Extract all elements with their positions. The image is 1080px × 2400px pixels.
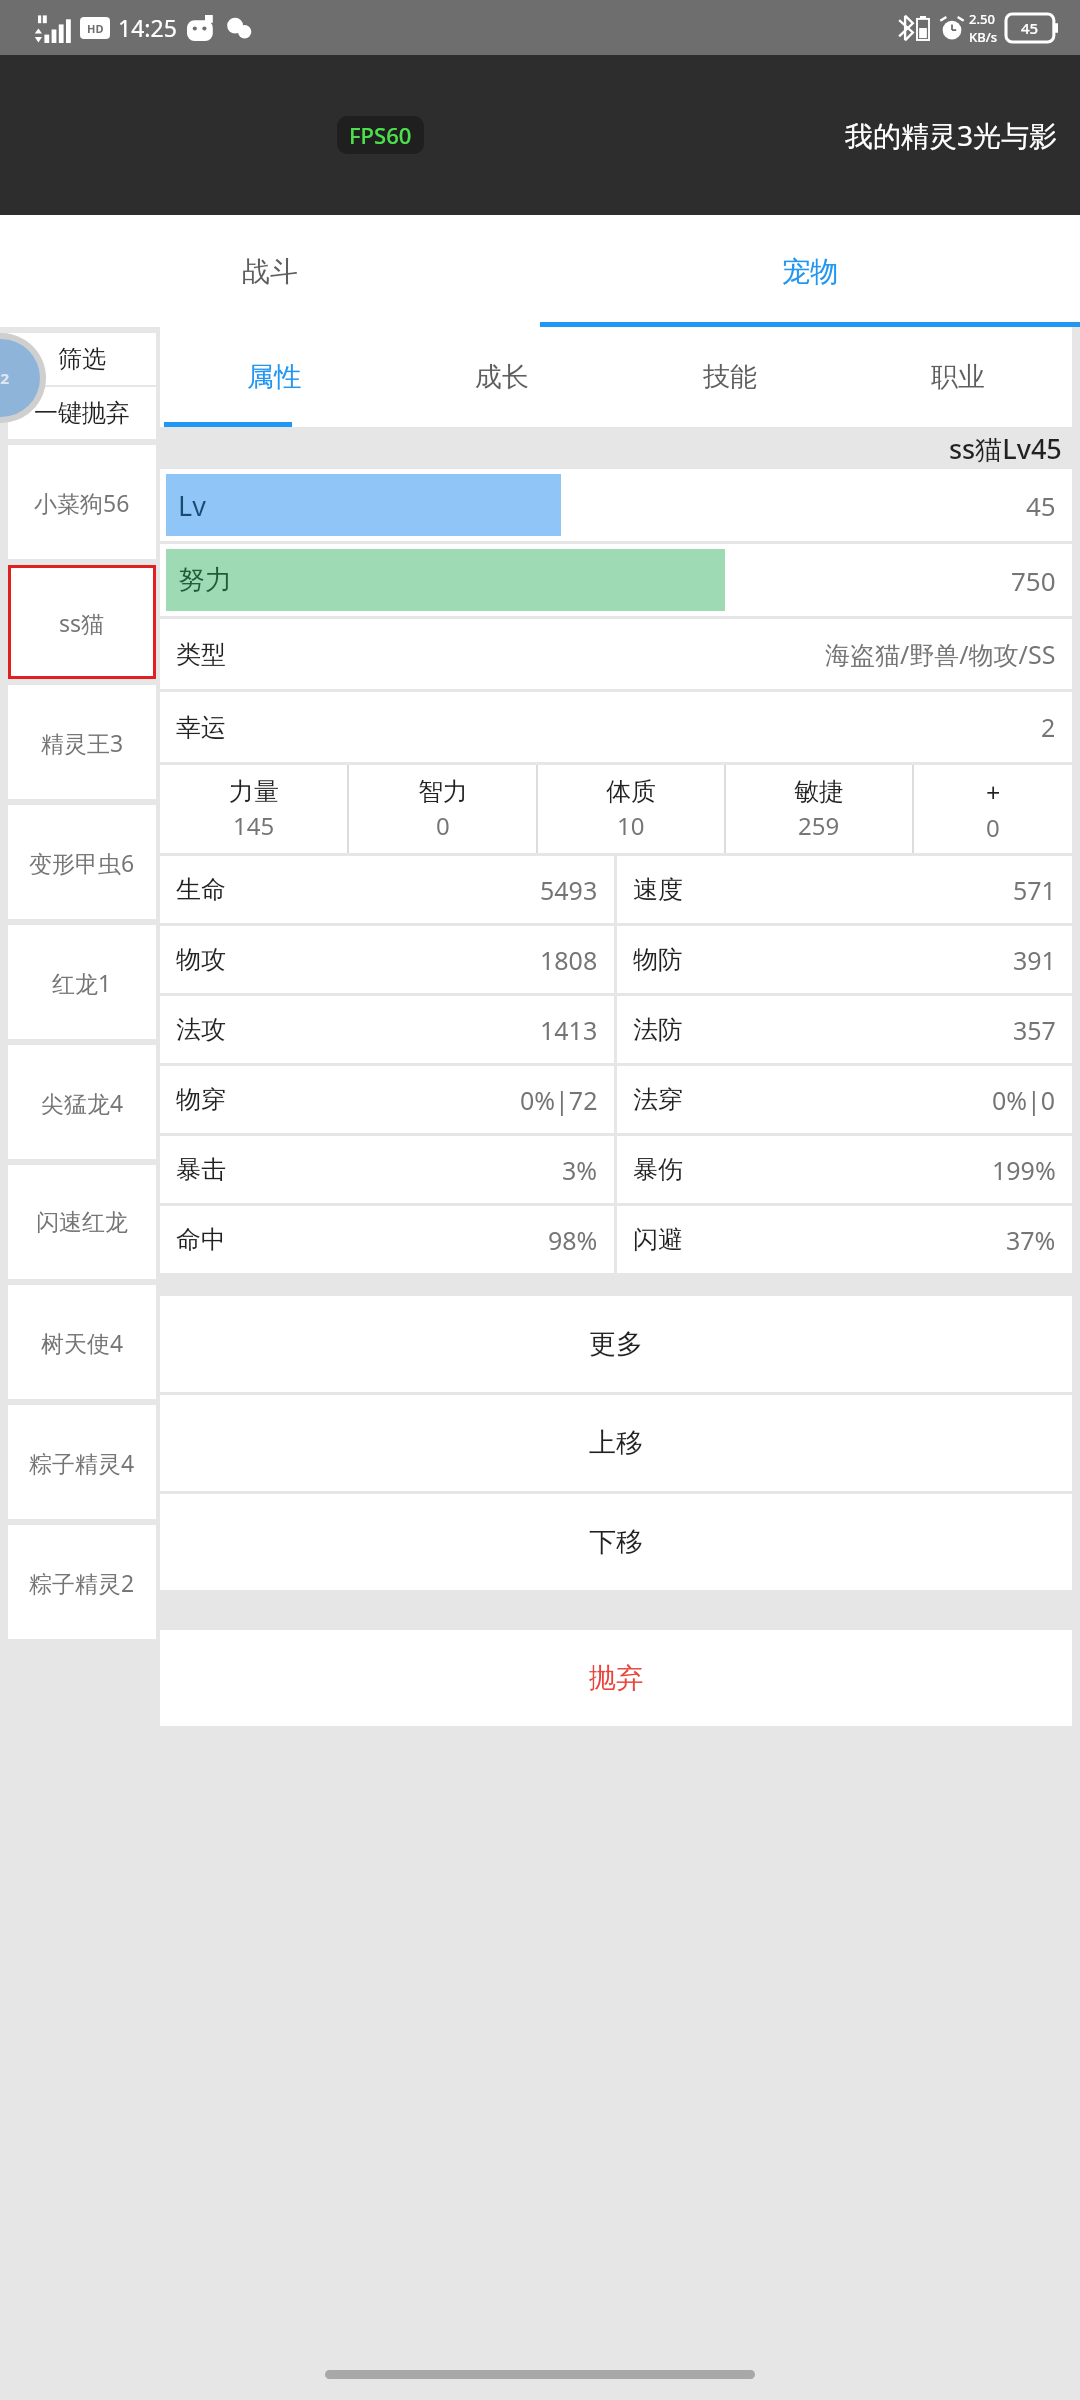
button[interactable]: 法穿 (633, 1066, 1056, 1133)
staticText: 尖猛龙4 (41, 1087, 124, 1118)
button[interactable]: 类型 (176, 619, 1056, 689)
staticText: 2 (1041, 710, 1056, 744)
button[interactable]: 暴伤 (633, 1136, 1056, 1203)
button[interactable]: 尖猛龙4 (8, 1045, 156, 1159)
button[interactable]: 属性 (160, 327, 388, 427)
button[interactable]: 体质 (538, 765, 724, 853)
staticText: 粽子精灵2 (29, 1567, 135, 1598)
button[interactable]: 速度 (633, 856, 1056, 923)
button[interactable]: 幸运 (176, 692, 1056, 762)
staticText: ss猫Lv45 (949, 430, 1062, 467)
staticText: 闪速红龙 (36, 1208, 128, 1237)
button[interactable]: 战斗 (0, 215, 540, 327)
button[interactable]: 变形甲虫6 (8, 805, 156, 919)
staticText: 暴击 (176, 1154, 226, 1185)
staticText: 抛弃 (589, 1661, 643, 1695)
staticText: 战斗 (242, 254, 298, 289)
staticText: 45 (1026, 488, 1056, 523)
staticText: 1413 (540, 1013, 598, 1047)
staticText: 199% (992, 1153, 1056, 1187)
button[interactable]: 法攻 (176, 996, 598, 1063)
staticText: 5493 (540, 873, 598, 907)
button[interactable]: 智力 (349, 765, 536, 853)
button[interactable]: Floating menu (0, 339, 40, 417)
staticText: 45 (1021, 18, 1039, 38)
staticText: 259 (798, 809, 840, 842)
staticText: 技能 (703, 360, 757, 394)
button[interactable]: 宠物 (540, 215, 1080, 327)
button[interactable]: 职业 (844, 327, 1072, 427)
button[interactable]: 闪避 (633, 1206, 1056, 1273)
staticText: 571 (1013, 873, 1056, 907)
staticText: 法防 (633, 1014, 683, 1045)
button[interactable]: 粽子精灵2 (8, 1525, 156, 1639)
staticText: 物防 (633, 944, 683, 975)
button[interactable]: 努力 (160, 544, 1072, 616)
staticText: 体质 (606, 776, 656, 807)
staticText: 命中 (176, 1224, 226, 1255)
staticText: 391 (1013, 943, 1056, 977)
button[interactable]: 上移 (160, 1395, 1072, 1491)
button[interactable]: + (914, 765, 1072, 853)
staticText: Lv (178, 487, 206, 524)
button[interactable]: 技能 (616, 327, 844, 427)
staticText: 1808 (540, 943, 598, 977)
staticText: 0%|0 (992, 1083, 1056, 1117)
staticText: 属性 (247, 360, 301, 394)
staticText: 0 (986, 811, 1000, 844)
staticText: 物穿 (176, 1084, 226, 1115)
staticText: 速度 (633, 874, 683, 905)
staticText: 98% (548, 1223, 598, 1257)
staticText: 我的精灵3光与影 (845, 116, 1058, 154)
button[interactable]: ss猫 (8, 565, 156, 679)
staticText: 小菜狗56 (34, 487, 130, 518)
button[interactable]: 下移 (160, 1494, 1072, 1590)
staticText: 海盗猫/野兽/物攻/SS (825, 637, 1056, 671)
button[interactable]: 敏捷 (726, 765, 912, 853)
button[interactable]: 物防 (633, 926, 1056, 993)
staticText: 22 (0, 368, 10, 388)
staticText: 14:25 (118, 12, 177, 43)
button[interactable]: 物穿 (176, 1066, 598, 1133)
button[interactable]: 成长 (388, 327, 616, 427)
button[interactable]: 树天使4 (8, 1285, 156, 1399)
button[interactable]: 暴击 (176, 1136, 598, 1203)
staticText: 精灵王3 (41, 727, 124, 758)
button[interactable]: 一键抛弃 (8, 387, 156, 439)
button[interactable]: 精灵王3 (8, 685, 156, 799)
staticText: 法穿 (633, 1084, 683, 1115)
staticText: 树天使4 (41, 1327, 124, 1358)
staticText: 上移 (589, 1426, 643, 1460)
staticText: 0%|72 (520, 1083, 598, 1117)
button[interactable]: 小菜狗56 (8, 445, 156, 559)
button[interactable]: 物攻 (176, 926, 598, 993)
button[interactable]: 生命 (176, 856, 598, 923)
button[interactable]: 更多 (160, 1296, 1072, 1392)
staticText: 2.50 (969, 10, 995, 28)
staticText: 筛选 (58, 344, 106, 374)
button[interactable]: 红龙1 (8, 925, 156, 1039)
staticText: 变形甲虫6 (29, 847, 135, 878)
staticText: 成长 (475, 360, 529, 394)
staticText: 10 (617, 809, 645, 842)
staticText: KB/s (969, 28, 998, 46)
button[interactable]: 筛选 (8, 333, 156, 385)
staticText: 暴伤 (633, 1154, 683, 1185)
staticText: 红龙1 (52, 967, 112, 998)
button[interactable]: 力量 (160, 765, 347, 853)
button[interactable]: 命中 (176, 1206, 598, 1273)
staticText: 力量 (229, 776, 279, 807)
staticText: 生命 (176, 874, 226, 905)
staticText: 更多 (589, 1327, 643, 1361)
staticText: 下移 (589, 1525, 643, 1559)
staticText: 物攻 (176, 944, 226, 975)
staticText: 0 (436, 809, 450, 842)
staticText: 145 (233, 809, 275, 842)
staticText: FPS60 (349, 120, 412, 150)
staticText: 幸运 (176, 712, 226, 743)
button[interactable]: 抛弃 (160, 1630, 1072, 1726)
button[interactable]: 法防 (633, 996, 1056, 1063)
button[interactable]: Lv (160, 469, 1072, 541)
button[interactable]: 闪速红龙 (8, 1165, 156, 1279)
button[interactable]: 粽子精灵4 (8, 1405, 156, 1519)
